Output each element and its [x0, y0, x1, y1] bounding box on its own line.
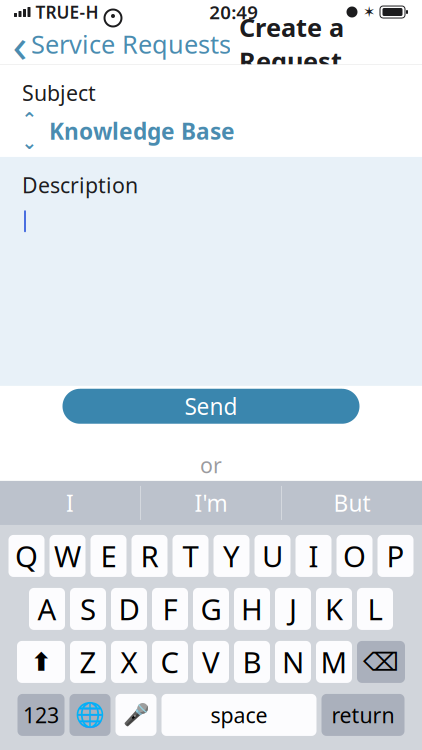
- staticText: R: [140, 536, 158, 575]
- button[interactable]: I: [295, 535, 331, 577]
- staticText: ‹: [12, 12, 27, 76]
- staticText: P: [386, 536, 404, 575]
- button[interactable]: N: [275, 641, 311, 683]
- staticText: 20:49: [209, 0, 258, 24]
- staticText: space: [210, 701, 267, 729]
- staticText: return: [331, 701, 394, 729]
- staticText: 🌐: [75, 701, 105, 729]
- button[interactable]: X: [111, 641, 147, 683]
- staticText: T: [182, 536, 198, 575]
- button[interactable]: V: [193, 641, 229, 683]
- staticText: 123: [23, 701, 59, 729]
- staticText: D: [118, 589, 139, 628]
- staticText: U: [262, 536, 283, 575]
- button[interactable]: S: [70, 588, 106, 630]
- staticText: Z: [79, 642, 96, 681]
- button[interactable]: Return: [321, 694, 404, 736]
- staticText: ⌃: [21, 109, 37, 130]
- staticText: A: [37, 589, 56, 628]
- button[interactable]: L: [357, 588, 393, 630]
- staticText: ⌫: [363, 648, 399, 676]
- button[interactable]: O: [336, 535, 372, 577]
- button[interactable]: E: [90, 535, 126, 577]
- button[interactable]: G: [193, 588, 229, 630]
- staticText: Description: [22, 171, 138, 199]
- button[interactable]: J: [275, 588, 311, 630]
- staticText: Subject: [22, 78, 96, 107]
- button[interactable]: W: [49, 535, 85, 577]
- staticText: ⌄: [21, 132, 37, 153]
- button[interactable]: B: [234, 641, 270, 683]
- staticText: ✶: [363, 4, 375, 20]
- staticText: Send: [184, 391, 237, 421]
- staticText: But: [333, 488, 370, 518]
- staticText: H: [241, 589, 263, 628]
- staticText: Q: [15, 536, 38, 575]
- staticText: I'm: [194, 488, 227, 518]
- staticText: L: [367, 589, 382, 628]
- button[interactable]: M: [316, 641, 352, 683]
- button[interactable]: D: [111, 588, 147, 630]
- button[interactable]: Shift: [17, 641, 65, 683]
- button[interactable]: Q: [8, 535, 44, 577]
- staticText: J: [289, 589, 297, 628]
- staticText: E: [100, 536, 116, 575]
- staticText: C: [160, 642, 179, 681]
- staticText: M: [320, 642, 347, 681]
- staticText: O: [343, 536, 366, 575]
- staticText: ⬆: [30, 648, 51, 676]
- button[interactable]: T: [172, 535, 208, 577]
- staticText: K: [325, 589, 343, 628]
- staticText: X: [120, 642, 137, 681]
- staticText: W: [54, 536, 81, 575]
- button[interactable]: H: [234, 588, 270, 630]
- staticText: Knowledge Base: [49, 116, 235, 146]
- button[interactable]: F: [152, 588, 188, 630]
- button[interactable]: C: [152, 641, 188, 683]
- button[interactable]: R: [131, 535, 167, 577]
- staticText: TRUE-H: [35, 0, 98, 23]
- staticText: I: [308, 536, 318, 575]
- button[interactable]: ‹: [0, 22, 231, 66]
- button[interactable]: ⌃: [0, 107, 422, 157]
- button[interactable]: Y: [213, 535, 249, 577]
- button[interactable]: Z: [70, 641, 106, 683]
- staticText: Service Requests: [31, 27, 231, 61]
- button[interactable]: I'm: [141, 481, 281, 525]
- button[interactable]: space: [161, 694, 316, 736]
- button[interactable]: But: [282, 481, 422, 525]
- button[interactable]: Numbers: [17, 694, 64, 736]
- button[interactable]: P: [377, 535, 413, 577]
- staticText: B: [242, 642, 261, 681]
- staticText: G: [200, 589, 221, 628]
- staticText: I: [66, 488, 74, 518]
- staticText: N: [282, 642, 304, 681]
- staticText: Create a Request: [239, 10, 344, 78]
- button[interactable]: I: [0, 481, 140, 525]
- button[interactable]: K: [316, 588, 352, 630]
- button[interactable]: Next keyboard: [69, 694, 110, 736]
- staticText: V: [202, 642, 220, 681]
- staticText: Y: [223, 536, 240, 575]
- button[interactable]: A: [29, 588, 65, 630]
- staticText: 🎤: [122, 703, 149, 727]
- button[interactable]: U: [254, 535, 290, 577]
- staticText: S: [80, 589, 96, 628]
- staticText: F: [162, 589, 177, 628]
- staticText: or: [200, 451, 222, 479]
- button[interactable]: Send: [62, 389, 359, 424]
- button[interactable]: Delete: [357, 641, 405, 683]
- button[interactable]: Dictation: [115, 694, 156, 736]
